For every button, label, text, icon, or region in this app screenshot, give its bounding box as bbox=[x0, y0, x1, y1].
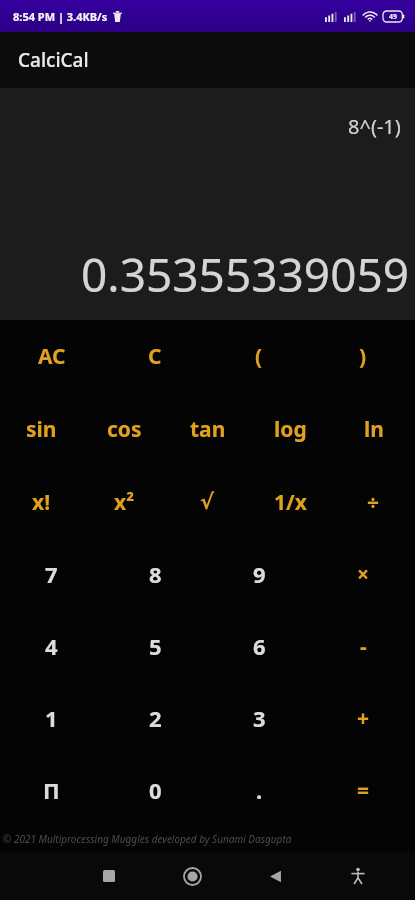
staticText: 9 bbox=[253, 559, 266, 589]
staticText: 49 bbox=[389, 12, 398, 22]
staticText: tan bbox=[190, 415, 226, 444]
button[interactable]: 1 bbox=[0, 682, 103, 754]
staticText: 1 bbox=[45, 703, 58, 733]
button[interactable]: . bbox=[207, 754, 311, 826]
staticText: AC bbox=[38, 342, 66, 371]
staticText: × bbox=[357, 560, 370, 589]
staticText: 4 bbox=[45, 631, 58, 661]
staticText: - bbox=[360, 632, 367, 661]
staticText: x² bbox=[114, 488, 135, 517]
button[interactable]: Home bbox=[170, 854, 214, 898]
staticText: sin bbox=[26, 415, 57, 444]
button[interactable]: ln bbox=[332, 393, 415, 466]
staticText: . bbox=[256, 775, 263, 805]
button[interactable]: x² bbox=[83, 466, 166, 538]
button[interactable]: - bbox=[311, 610, 415, 682]
button[interactable]: ÷ bbox=[332, 466, 415, 538]
staticText: ) bbox=[359, 342, 367, 371]
button[interactable]: sin bbox=[0, 393, 83, 466]
button[interactable]: Π bbox=[0, 754, 103, 826]
staticText: 0 bbox=[149, 775, 162, 805]
button[interactable]: Back bbox=[253, 854, 297, 898]
staticText: + bbox=[357, 704, 370, 733]
button[interactable]: 9 bbox=[207, 538, 311, 610]
staticText: ÷ bbox=[367, 488, 380, 517]
button[interactable]: C bbox=[103, 320, 207, 393]
staticText: 8 bbox=[149, 559, 162, 589]
staticText: CalciCal bbox=[18, 47, 89, 73]
button[interactable]: log bbox=[249, 393, 332, 466]
staticText: = bbox=[357, 776, 370, 805]
staticText: 5 bbox=[149, 631, 162, 661]
staticText: C bbox=[148, 342, 162, 371]
staticText: 1/x bbox=[274, 488, 307, 517]
button[interactable]: 1/x bbox=[249, 466, 332, 538]
button[interactable]: Accessibility bbox=[336, 854, 380, 898]
button[interactable]: Recents bbox=[87, 854, 131, 898]
staticText: 8^(-1) bbox=[348, 113, 401, 140]
button[interactable]: 4 bbox=[0, 610, 103, 682]
staticText: ( bbox=[255, 342, 263, 371]
staticText: 8:54 PM | 3.4KB/s bbox=[13, 9, 108, 24]
button[interactable]: 6 bbox=[207, 610, 311, 682]
button[interactable]: cos bbox=[83, 393, 166, 466]
staticText: log bbox=[274, 415, 307, 444]
button[interactable]: ( bbox=[207, 320, 311, 393]
staticText: 3 bbox=[253, 703, 266, 733]
button[interactable]: 7 bbox=[0, 538, 103, 610]
staticText: √ bbox=[200, 490, 215, 514]
button[interactable]: AC bbox=[0, 320, 103, 393]
staticText: 7 bbox=[45, 559, 58, 589]
button[interactable]: 3 bbox=[207, 682, 311, 754]
staticText: 6 bbox=[253, 631, 266, 661]
staticText: 0.35355339059 bbox=[81, 243, 410, 306]
button[interactable]: × bbox=[311, 538, 415, 610]
staticText: © 2021 Multiprocessing Muggles developed… bbox=[3, 832, 292, 846]
button[interactable]: = bbox=[311, 754, 415, 826]
button[interactable]: 8 bbox=[103, 538, 207, 610]
staticText: x! bbox=[32, 488, 51, 517]
staticText: Π bbox=[43, 775, 60, 805]
button[interactable]: + bbox=[311, 682, 415, 754]
staticText: ln bbox=[364, 415, 384, 444]
button[interactable]: 2 bbox=[103, 682, 207, 754]
button[interactable]: √ bbox=[166, 466, 249, 538]
button[interactable]: 0 bbox=[103, 754, 207, 826]
staticText: cos bbox=[107, 415, 142, 444]
button[interactable]: 5 bbox=[103, 610, 207, 682]
button[interactable]: tan bbox=[166, 393, 249, 466]
button[interactable]: ) bbox=[311, 320, 415, 393]
button[interactable]: x! bbox=[0, 466, 83, 538]
staticText: 2 bbox=[149, 703, 162, 733]
